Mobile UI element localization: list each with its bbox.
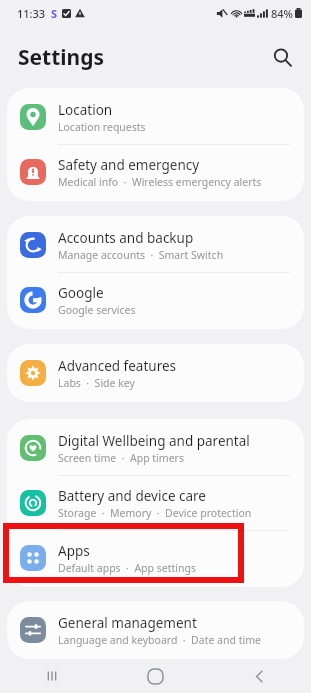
staticText: General management: [58, 614, 197, 632]
button[interactable]: Recent apps: [0, 659, 103, 693]
staticText: Medical info · Wireless emergency alerts: [58, 175, 262, 189]
button[interactable]: Apps: [7, 531, 304, 585]
button[interactable]: Google: [7, 273, 304, 327]
button[interactable]: General management: [7, 603, 304, 657]
staticText: S: [51, 6, 58, 21]
button[interactable]: Home: [103, 659, 207, 693]
staticText: Labs · Side key: [58, 376, 135, 390]
staticText: Language and keyboard · Date and time: [58, 633, 261, 647]
staticText: Settings: [18, 43, 105, 72]
button[interactable]: Battery and device care: [7, 476, 304, 530]
staticText: Location requests: [58, 120, 146, 134]
staticText: Accounts and backup: [58, 229, 194, 247]
staticText: 84%: [271, 6, 293, 21]
staticText: Default apps · App settings: [58, 561, 196, 575]
staticText: Google: [58, 284, 104, 302]
staticText: Google services: [58, 303, 136, 317]
staticText: Screen time · App timers: [58, 451, 184, 465]
staticText: 11:33: [17, 6, 46, 21]
staticText: Manage accounts · Smart Switch: [58, 248, 224, 262]
button[interactable]: Accounts and backup: [7, 218, 304, 272]
button[interactable]: Safety and emergency: [7, 145, 304, 199]
staticText: Digital Wellbeing and parental controls: [58, 432, 292, 450]
button[interactable]: Digital Wellbeing and parental controls: [7, 421, 304, 475]
staticText: Safety and emergency: [58, 156, 200, 174]
button[interactable]: Search: [264, 39, 300, 75]
button[interactable]: Back: [207, 659, 311, 693]
staticText: Location: [58, 101, 113, 119]
staticText: Advanced features: [58, 357, 177, 375]
button[interactable]: Location: [7, 90, 304, 144]
staticText: Storage · Memory · Device protection: [58, 506, 252, 520]
staticText: Apps: [58, 542, 90, 560]
button[interactable]: Advanced features: [7, 346, 304, 400]
staticText: Battery and device care: [58, 487, 206, 505]
